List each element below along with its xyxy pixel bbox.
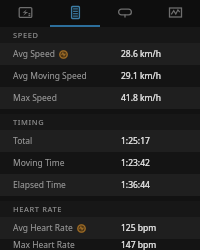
button[interactable]: Max Speed xyxy=(0,87,200,109)
button[interactable]: Elapsed Time xyxy=(0,174,200,196)
staticText: HEART RATE xyxy=(13,204,63,214)
staticText: Elapsed Time xyxy=(13,179,66,191)
staticText: 125 bpm xyxy=(121,222,157,234)
staticText: SPEED xyxy=(13,30,39,40)
staticText: Max Speed xyxy=(13,92,57,104)
button[interactable]: Moving Time xyxy=(0,152,200,174)
staticText: 1:25:17 xyxy=(121,135,150,147)
staticText: 28.6 km/h xyxy=(121,48,161,60)
button[interactable]: Avg Moving Speed xyxy=(0,65,200,87)
staticText: 41.8 km/h xyxy=(121,92,161,104)
staticText: Moving Time xyxy=(13,157,65,169)
staticText: Avg Speed xyxy=(13,48,55,60)
staticText: 1:36:44 xyxy=(121,179,150,191)
staticText: Avg Moving Speed xyxy=(13,70,87,82)
button[interactable]: Avg Speed xyxy=(0,43,200,65)
button[interactable]: Total xyxy=(0,130,200,152)
button[interactable]: Map xyxy=(0,0,50,24)
staticText: 29.1 km/h xyxy=(121,70,161,82)
button[interactable]: Charts xyxy=(150,0,200,24)
staticText: TIMING xyxy=(13,117,45,127)
button[interactable]: Max Heart Rate xyxy=(0,239,200,250)
button[interactable]: Summary xyxy=(50,0,100,24)
staticText: 147 bpm xyxy=(121,239,157,250)
staticText: Avg Heart Rate xyxy=(13,222,73,234)
button[interactable]: Avg Heart Rate xyxy=(0,217,200,239)
staticText: Total xyxy=(13,135,33,147)
button[interactable]: Laps xyxy=(100,0,150,24)
staticText: 1:23:42 xyxy=(121,157,150,169)
staticText: Max Heart Rate xyxy=(13,239,75,250)
